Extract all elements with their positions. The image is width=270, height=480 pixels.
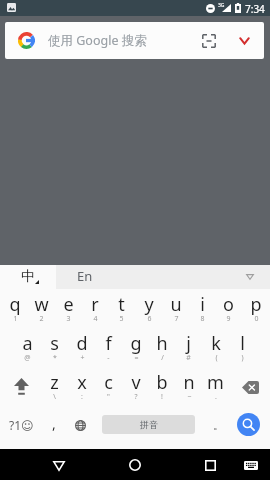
staticText: - xyxy=(107,353,110,363)
staticText: l xyxy=(240,331,245,356)
button[interactable]: r xyxy=(81,290,108,328)
staticText: z xyxy=(50,370,59,395)
staticText: k xyxy=(211,331,221,356)
button[interactable]: s xyxy=(41,329,68,367)
staticText: 3 xyxy=(66,314,71,324)
button[interactable]: e xyxy=(55,290,82,328)
button[interactable]: c xyxy=(95,368,122,406)
staticText: @ xyxy=(24,353,31,363)
staticText: = xyxy=(134,353,139,363)
button[interactable]: h xyxy=(148,329,175,367)
staticText: d xyxy=(76,331,88,356)
staticText: v xyxy=(131,370,141,395)
staticText: g xyxy=(130,331,142,356)
staticText: 1 xyxy=(13,314,18,324)
button[interactable]: t xyxy=(108,290,135,328)
button[interactable]: a xyxy=(14,329,41,367)
button[interactable]: , xyxy=(42,408,66,442)
staticText: " xyxy=(107,392,110,402)
staticText: j xyxy=(186,331,191,356)
button[interactable]: 中 xyxy=(0,265,56,289)
button[interactable]: Show more options xyxy=(236,265,264,289)
staticText: \ xyxy=(53,392,56,402)
button[interactable]: Expand search options xyxy=(235,28,253,54)
button[interactable]: Google Lens xyxy=(196,28,222,54)
staticText: m xyxy=(207,370,224,395)
staticText: 。 xyxy=(213,418,224,432)
staticText: 9 xyxy=(226,314,231,324)
staticText: 7 xyxy=(174,314,179,324)
button[interactable]: 使用 Google 搜索 xyxy=(5,22,264,59)
staticText: w xyxy=(34,292,49,317)
staticText: ~ xyxy=(187,392,192,402)
button[interactable]: l xyxy=(229,329,256,367)
staticText: n xyxy=(183,370,195,395)
button[interactable]: Recent apps xyxy=(192,449,229,480)
staticText: p xyxy=(250,292,262,317)
button[interactable]: En xyxy=(56,265,270,289)
button[interactable]: z xyxy=(41,368,68,406)
staticText: * xyxy=(53,353,57,363)
button[interactable]: o xyxy=(215,290,242,328)
staticText: e xyxy=(63,292,74,317)
button[interactable]: k xyxy=(202,329,229,367)
staticText: 2 xyxy=(39,314,44,324)
button[interactable]: i xyxy=(189,290,216,328)
staticText: ! xyxy=(161,392,163,402)
button[interactable]: 。 xyxy=(204,408,232,442)
button[interactable]: y xyxy=(135,290,162,328)
button[interactable]: d xyxy=(68,329,95,367)
staticText: ?1☺ xyxy=(9,417,34,433)
staticText: / xyxy=(161,353,164,363)
button[interactable]: Change keyboard language xyxy=(66,408,95,442)
staticText: 3G xyxy=(218,2,225,9)
staticText: o xyxy=(223,292,234,317)
staticText: r xyxy=(91,292,99,317)
staticText: 7:34 xyxy=(245,2,265,16)
staticText: q xyxy=(9,292,21,317)
button[interactable]: Home xyxy=(116,449,153,480)
button[interactable]: Backspace xyxy=(234,369,266,405)
button[interactable]: f xyxy=(95,329,122,367)
button[interactable]: w xyxy=(28,290,55,328)
button[interactable]: m xyxy=(202,368,229,406)
staticText: u xyxy=(170,292,182,317)
staticText: ) xyxy=(241,353,244,363)
staticText: , xyxy=(52,414,56,433)
staticText: 6 xyxy=(147,314,152,324)
staticText: 5 xyxy=(119,314,124,324)
button[interactable]: b xyxy=(148,368,175,406)
staticText: : xyxy=(81,392,83,402)
staticText: 4 xyxy=(93,314,98,324)
staticText: 拼音 xyxy=(140,419,158,430)
button[interactable]: x xyxy=(68,368,95,406)
staticText: c xyxy=(104,370,113,395)
staticText: ( xyxy=(215,353,218,363)
staticText: . xyxy=(215,392,217,402)
staticText: En xyxy=(77,267,93,285)
button[interactable]: 拼音 xyxy=(102,415,195,434)
staticText: t xyxy=(118,292,125,317)
button[interactable]: j xyxy=(175,329,202,367)
staticText: a xyxy=(22,331,33,356)
button[interactable]: ?1☺ xyxy=(0,408,42,442)
staticText: y xyxy=(144,292,154,317)
button[interactable]: Back xyxy=(40,449,77,480)
staticText: 8 xyxy=(200,314,205,324)
button[interactable]: Shift xyxy=(6,369,36,405)
button[interactable]: Switch keyboard xyxy=(234,449,267,480)
button[interactable]: p xyxy=(242,290,269,328)
button[interactable]: v xyxy=(122,368,149,406)
staticText: h xyxy=(156,331,168,356)
button[interactable]: q xyxy=(1,290,28,328)
staticText: # xyxy=(186,353,191,363)
staticText: s xyxy=(50,331,59,356)
button[interactable]: g xyxy=(122,329,149,367)
button[interactable]: n xyxy=(175,368,202,406)
button[interactable]: u xyxy=(162,290,189,328)
staticText: + xyxy=(80,353,85,363)
staticText: 0 xyxy=(254,314,259,324)
staticText: x xyxy=(77,370,87,395)
button[interactable]: Search xyxy=(237,413,260,436)
staticText: 使用 Google 搜索 xyxy=(48,32,147,49)
